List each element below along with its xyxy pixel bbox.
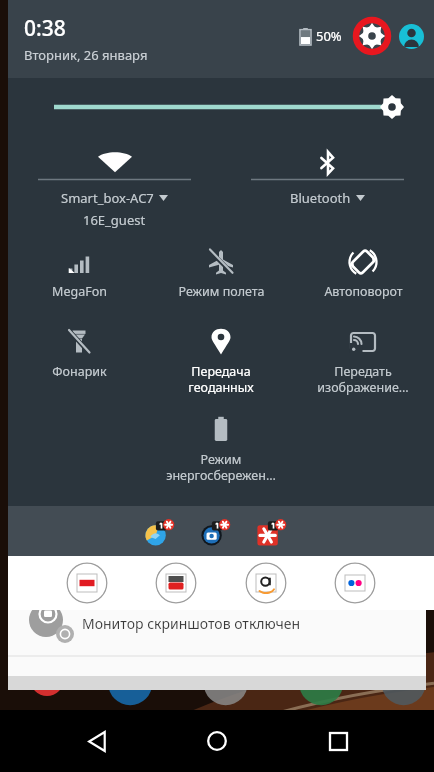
button[interactable]: Режим полета [150,243,292,323]
staticText: 50% [316,27,342,45]
button[interactable]: Yandex [66,562,108,604]
button[interactable]: Smart_box-AC7 [8,150,221,229]
staticText: Режим полета [178,283,265,300]
staticText: Монитор скриншотов отключен [82,614,301,633]
button[interactable]: Flickr [334,562,376,604]
staticText: 0:38 [24,14,66,43]
button[interactable]: Передать изображение… [292,323,434,411]
staticText: Фонарик [52,363,107,380]
staticText: Передача геоданных [188,363,254,395]
button[interactable]: Bluetooth [221,150,434,207]
staticText: Автоповорот [324,283,403,300]
button[interactable]: Home [193,717,241,765]
button[interactable]: Back [73,717,121,765]
button[interactable]: Recents [314,717,362,765]
button[interactable]: Режим энергосбережен… [150,411,292,499]
button[interactable]: Settings [353,17,391,55]
button[interactable]: MegaFon [8,243,150,323]
button[interactable]: Передача геоданных [150,323,292,411]
button[interactable]: Notification 2 [254,515,288,549]
button[interactable]: Фонарик [8,323,150,411]
staticText: Bluetooth [290,189,351,207]
button[interactable]: Notification 0 [142,515,176,549]
button[interactable]: YouTube [155,562,197,604]
button[interactable]: Amazon [245,562,287,604]
staticText: Вторник, 26 января [24,46,148,64]
button[interactable]: Автоповорот [292,243,434,323]
button[interactable]: Brightness [8,78,434,136]
staticText: MegaFon [52,283,107,300]
staticText: 16E_guest [83,211,146,229]
button[interactable]: Notification 1 [198,515,232,549]
button[interactable]: User profile [399,24,424,49]
staticText: Режим энергосбережен… [166,451,276,483]
staticText: Smart_box-AC7 [61,189,154,207]
staticText: Передать изображение… [317,363,409,395]
